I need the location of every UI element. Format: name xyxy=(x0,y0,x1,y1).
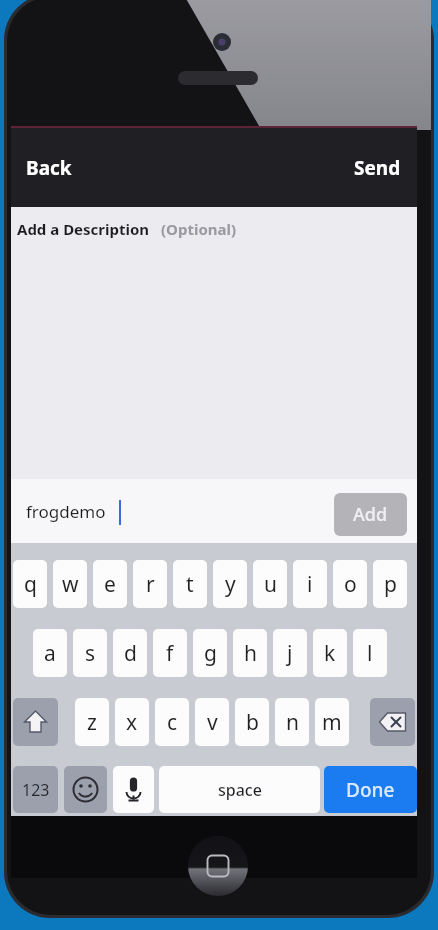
button[interactable]: 123 xyxy=(13,766,58,813)
button[interactable]: z xyxy=(75,698,109,746)
button[interactable]: Dictate xyxy=(113,766,154,813)
button[interactable]: k xyxy=(313,629,347,677)
button[interactable]: m xyxy=(315,698,349,746)
staticText: g xyxy=(204,639,217,668)
button[interactable]: h xyxy=(233,629,267,677)
staticText: (Optional) xyxy=(161,219,237,239)
button[interactable]: Send xyxy=(320,128,413,207)
staticText: c xyxy=(167,708,178,737)
button[interactable]: p xyxy=(373,560,407,608)
button[interactable]: w xyxy=(53,560,87,608)
staticText: Add a Description xyxy=(17,219,154,239)
staticText: 123 xyxy=(22,779,50,801)
button[interactable]: e xyxy=(93,560,127,608)
staticText: t xyxy=(186,570,194,599)
button[interactable]: c xyxy=(155,698,189,746)
staticText: u xyxy=(264,570,277,599)
staticText: space xyxy=(218,779,262,801)
staticText: Send xyxy=(354,155,401,181)
button[interactable]: Add xyxy=(334,493,407,536)
staticText: i xyxy=(307,570,313,599)
staticText: Back xyxy=(26,155,72,181)
staticText: Add xyxy=(353,502,388,527)
staticText: v xyxy=(207,708,218,737)
staticText: z xyxy=(87,708,97,737)
staticText: m xyxy=(322,708,342,737)
button[interactable]: r xyxy=(133,560,167,608)
button[interactable]: a xyxy=(33,629,67,677)
staticText: r xyxy=(146,570,155,599)
button[interactable]: b xyxy=(235,698,269,746)
staticText: p xyxy=(384,570,397,599)
button[interactable]: Back xyxy=(14,128,104,207)
button[interactable]: v xyxy=(195,698,229,746)
staticText: o xyxy=(344,570,357,599)
button[interactable]: l xyxy=(353,629,387,677)
staticText: w xyxy=(62,570,79,599)
button[interactable]: Emoji xyxy=(64,766,107,813)
button[interactable]: f xyxy=(153,629,187,677)
button[interactable]: n xyxy=(275,698,309,746)
button[interactable]: o xyxy=(333,560,367,608)
staticText: b xyxy=(246,708,259,737)
button[interactable]: space xyxy=(159,766,320,813)
button[interactable]: g xyxy=(193,629,227,677)
staticText: h xyxy=(244,639,257,668)
staticText: d xyxy=(124,639,137,668)
staticText: n xyxy=(286,708,299,737)
staticText: a xyxy=(44,639,56,668)
button[interactable]: i xyxy=(293,560,327,608)
staticText: y xyxy=(225,570,236,599)
button[interactable]: x xyxy=(115,698,149,746)
button[interactable]: frogdemo xyxy=(11,479,331,543)
staticText: frogdemo xyxy=(26,500,106,523)
staticText: s xyxy=(85,639,96,668)
button[interactable]: u xyxy=(253,560,287,608)
staticText: j xyxy=(287,639,293,668)
staticText: l xyxy=(367,639,373,668)
staticText: Done xyxy=(346,777,395,803)
staticText: e xyxy=(104,570,116,599)
button[interactable]: j xyxy=(273,629,307,677)
staticText: f xyxy=(166,639,174,668)
button[interactable]: d xyxy=(113,629,147,677)
button[interactable]: Backspace xyxy=(370,698,415,746)
button[interactable]: Shift xyxy=(13,698,58,746)
button[interactable]: s xyxy=(73,629,107,677)
button[interactable]: Done xyxy=(324,766,417,813)
staticText: q xyxy=(24,570,37,599)
button[interactable]: y xyxy=(213,560,247,608)
staticText: x xyxy=(126,708,138,737)
button[interactable]: t xyxy=(173,560,207,608)
staticText: k xyxy=(324,639,336,668)
button[interactable] xyxy=(11,207,417,479)
button[interactable]: q xyxy=(13,560,47,608)
